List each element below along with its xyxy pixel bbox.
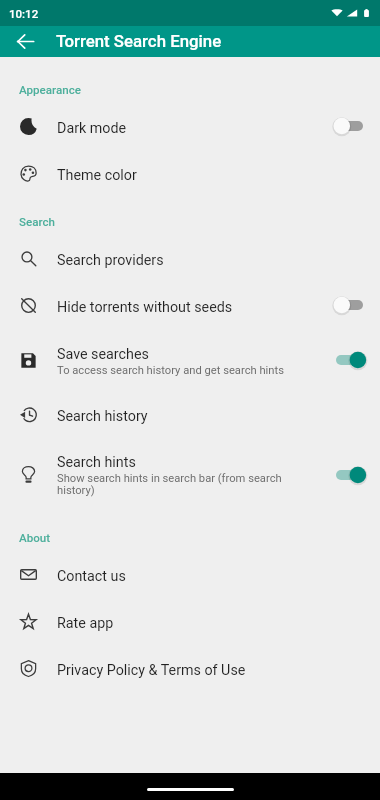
staticText: Show search hints in search bar (from se…: [57, 472, 285, 497]
button[interactable]: Save searches: [0, 331, 380, 393]
staticText: Rate app: [57, 615, 114, 632]
button[interactable]: Privacy Policy & Terms of Use: [0, 647, 380, 694]
button[interactable]: Search providers: [0, 237, 380, 284]
staticText: Search providers: [57, 252, 164, 269]
staticText: Search hints: [57, 454, 136, 471]
button[interactable]: Search history: [0, 393, 380, 440]
button[interactable]: Toggle: [336, 463, 380, 487]
staticText: Privacy Policy & Terms of Use: [57, 662, 246, 679]
staticText: Theme color: [57, 167, 137, 184]
staticText: Torrent Search Engine: [56, 31, 222, 51]
staticText: Dark mode: [57, 120, 127, 137]
button[interactable]: Back: [7, 26, 43, 57]
button[interactable]: Toggle: [336, 114, 380, 138]
button[interactable]: Rate app: [0, 600, 380, 647]
staticText: Contact us: [57, 568, 126, 585]
button[interactable]: Search hints: [0, 440, 380, 503]
staticText: To access search history and get search …: [57, 364, 284, 377]
button[interactable]: Theme color: [0, 152, 380, 199]
staticText: Search history: [57, 408, 148, 425]
button[interactable]: Hide torrents without seeds: [0, 284, 380, 331]
staticText: Save searches: [57, 346, 149, 363]
button[interactable]: Contact us: [0, 553, 380, 600]
button[interactable]: Toggle: [336, 348, 380, 372]
staticText: Appearance: [19, 83, 81, 97]
staticText: Hide torrents without seeds: [57, 299, 233, 316]
button[interactable]: Toggle: [336, 293, 380, 317]
button[interactable]: Dark mode: [0, 105, 380, 152]
staticText: Search: [19, 215, 55, 229]
staticText: About: [19, 531, 51, 545]
staticText: 10:12: [9, 7, 39, 20]
